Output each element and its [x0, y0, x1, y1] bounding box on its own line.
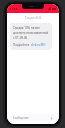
button[interactable]: Скидка 10% на все товары — [10, 23, 52, 50]
staticText: Сегодня 8:30 — [25, 16, 42, 20]
staticText: для всех пользователей МВСмк — [13, 31, 49, 35]
staticText: Подробнее — [13, 43, 31, 47]
staticText: с 01-09.06 — [13, 36, 28, 40]
button[interactable]: Voice message — [49, 116, 53, 120]
staticText: Сообщение — [13, 116, 29, 120]
staticText: clck.ru/RH — [31, 43, 46, 47]
button[interactable]: clck.ru/RH — [31, 43, 46, 47]
staticText: Скидка 10% на все товары — [13, 26, 49, 30]
button[interactable]: Сообщение — [10, 114, 56, 121]
